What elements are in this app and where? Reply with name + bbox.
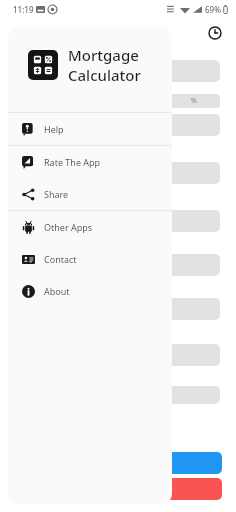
button[interactable]: About bbox=[8, 275, 172, 307]
button[interactable]: Help bbox=[8, 113, 172, 145]
staticText: Rate The App bbox=[44, 156, 101, 168]
staticText: About bbox=[44, 285, 70, 297]
button[interactable]: Contact bbox=[8, 243, 172, 275]
staticText: 69% bbox=[205, 4, 221, 15]
staticText: Help bbox=[44, 123, 64, 135]
button[interactable]: % bbox=[168, 94, 220, 108]
button[interactable] bbox=[14, 478, 222, 500]
button[interactable]: Other Apps bbox=[8, 211, 172, 243]
staticText: Contact bbox=[44, 253, 77, 265]
button[interactable]: Rate The App bbox=[8, 146, 172, 178]
staticText: 11:19 bbox=[13, 4, 34, 15]
button[interactable]: Share bbox=[8, 178, 172, 210]
staticText: Other Apps bbox=[44, 221, 93, 233]
staticText: Share bbox=[44, 188, 69, 200]
button[interactable] bbox=[14, 452, 222, 474]
button[interactable]: History bbox=[202, 20, 228, 46]
staticText: Mortgage bbox=[68, 45, 139, 65]
staticText: Calculator bbox=[68, 65, 141, 85]
staticText: % bbox=[191, 96, 197, 106]
